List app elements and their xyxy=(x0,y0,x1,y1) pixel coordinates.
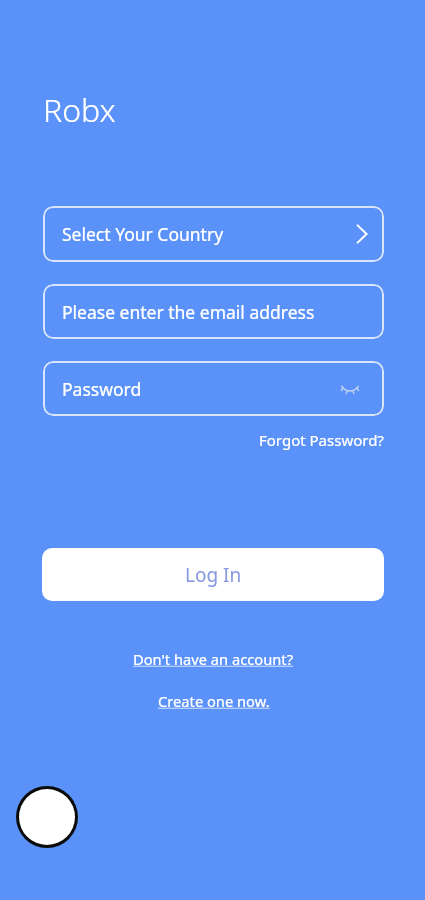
button[interactable]: Password xyxy=(43,361,384,416)
staticText: Robx xyxy=(43,88,116,132)
staticText: Log In xyxy=(185,562,242,588)
staticText: Create one now. xyxy=(158,691,270,711)
button[interactable]: Select country xyxy=(350,222,374,246)
button[interactable]: Log In xyxy=(42,548,384,601)
button[interactable]: Please enter the email address xyxy=(43,284,384,339)
staticText: Forgot Password? xyxy=(259,430,384,450)
button[interactable]: Select Your Country xyxy=(43,206,384,262)
button[interactable]: Home xyxy=(19,789,75,845)
staticText: Password xyxy=(62,377,142,401)
button[interactable]: Forgot Password? xyxy=(251,424,392,456)
button[interactable]: Create one now. xyxy=(148,685,280,717)
staticText: Select Your Country xyxy=(62,222,224,246)
button[interactable]: Show password xyxy=(338,377,362,401)
button[interactable]: Don't have an account? xyxy=(123,643,304,675)
staticText: Please enter the email address xyxy=(62,300,315,324)
staticText: Don't have an account? xyxy=(133,649,294,669)
